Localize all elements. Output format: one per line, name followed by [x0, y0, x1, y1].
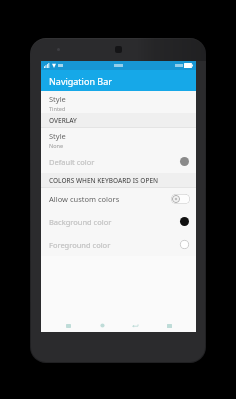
staticText: None: [49, 142, 64, 149]
button[interactable]: Back: [128, 319, 142, 332]
staticText: Background color: [49, 217, 112, 227]
button[interactable]: Foreground color: [41, 233, 196, 256]
staticText: Tinted: [49, 105, 66, 112]
button[interactable]: Home: [95, 319, 109, 332]
staticText: COLORS WHEN KEYBOARD IS OPEN: [49, 176, 159, 185]
button[interactable]: Recents: [162, 319, 176, 332]
staticText: OVERLAY: [49, 116, 77, 125]
staticText: Default color: [49, 157, 95, 167]
button[interactable]: Menu: [61, 319, 75, 332]
button[interactable]: Allow custom colors: [41, 188, 196, 210]
staticText: Foreground color: [49, 240, 111, 250]
button[interactable]: Style: [41, 128, 196, 150]
staticText: Style: [49, 131, 66, 141]
button[interactable]: Default color: [41, 150, 196, 173]
button[interactable]: Style: [41, 91, 196, 113]
staticText: Style: [49, 94, 66, 104]
staticText: Navigation Bar: [49, 75, 112, 87]
button[interactable]: Background color: [41, 210, 196, 233]
staticText: Allow custom colors: [49, 194, 120, 204]
